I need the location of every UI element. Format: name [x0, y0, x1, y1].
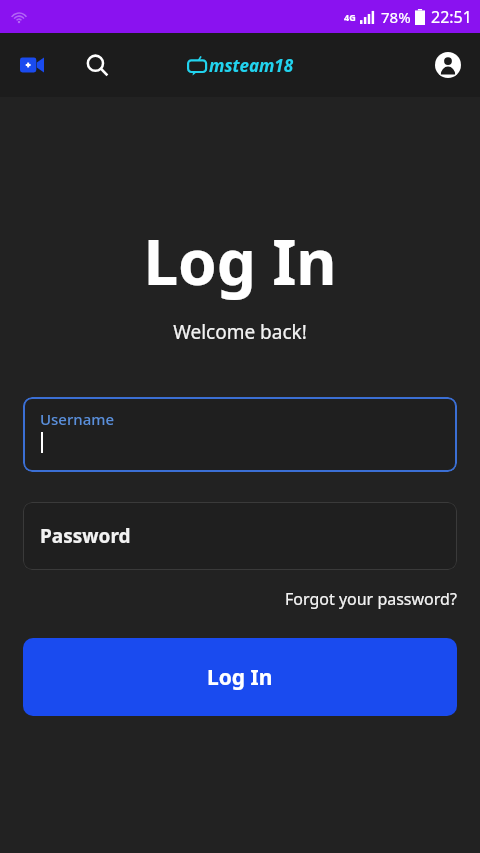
button[interactable]: Username: [23, 397, 457, 472]
staticText: Welcome back!: [0, 319, 480, 345]
button[interactable]: Forgot your password?: [285, 586, 480, 612]
staticText: Username: [40, 409, 115, 429]
button[interactable]: Start a video call: [8, 41, 56, 89]
staticText: 78%: [381, 7, 411, 27]
staticText: Password: [40, 523, 131, 549]
staticText: Forgot your password?: [285, 588, 457, 610]
staticText: Log In: [0, 219, 480, 303]
staticText: 4G: [344, 11, 356, 23]
button[interactable]: Log In: [23, 638, 457, 716]
button[interactable]: Account: [424, 41, 472, 89]
staticText: Log In: [207, 663, 273, 692]
staticText: msteam18: [209, 54, 294, 77]
button[interactable]: Password: [23, 502, 457, 570]
staticText: 22:51: [431, 6, 472, 28]
button[interactable]: Search: [73, 41, 121, 89]
